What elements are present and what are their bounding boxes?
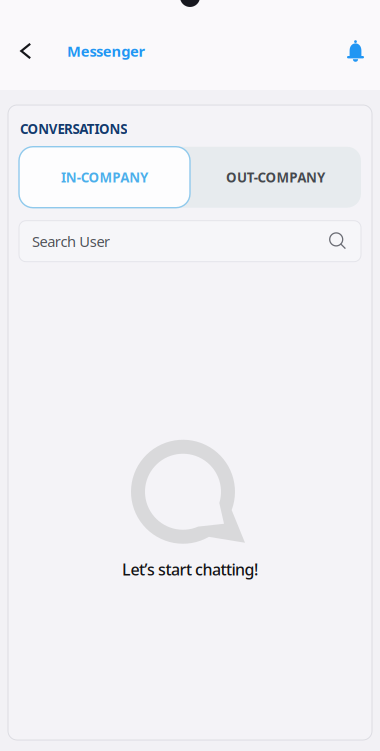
button[interactable]: Notifications — [331, 26, 380, 90]
staticText: Let’s start chatting! — [122, 559, 258, 580]
staticText: Search User — [32, 231, 110, 251]
button[interactable]: IN-COMPANY — [19, 147, 190, 208]
button[interactable]: Back — [0, 26, 51, 90]
button[interactable]: OUT-COMPANY — [190, 147, 361, 208]
staticText: Messenger — [67, 41, 146, 61]
staticText: OUT-COMPANY — [226, 168, 325, 186]
staticText: IN-COMPANY — [61, 168, 148, 186]
staticText: CONVERSATIONS — [20, 120, 127, 138]
